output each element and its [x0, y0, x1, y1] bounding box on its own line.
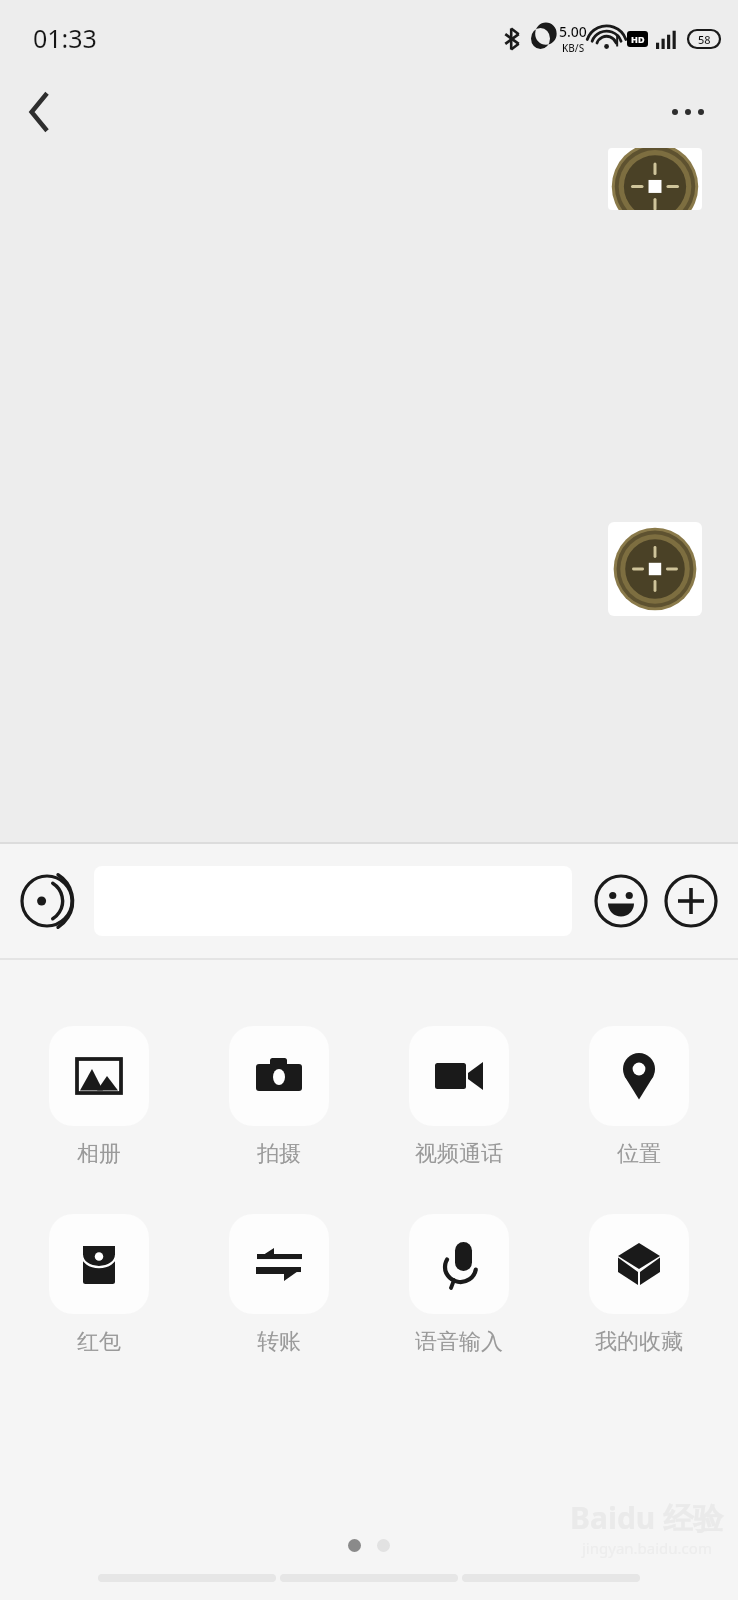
staticText: Baidu 经验 [570, 1497, 724, 1538]
button[interactable]: 红包 [40, 1214, 158, 1356]
button[interactable]: 转账 [220, 1214, 338, 1356]
button[interactable]: 拍摄 [220, 1026, 338, 1168]
button[interactable] [608, 148, 702, 210]
staticText: 我的收藏 [595, 1328, 683, 1356]
staticText: 相册 [77, 1140, 121, 1168]
button[interactable] [608, 522, 702, 616]
button[interactable]: 位置 [580, 1026, 698, 1168]
button[interactable]: Back [12, 84, 68, 140]
staticText: 位置 [617, 1140, 661, 1168]
staticText: 红包 [77, 1328, 121, 1356]
staticText: HD [631, 33, 645, 45]
button[interactable]: 我的收藏 [580, 1214, 698, 1356]
staticText: 转账 [257, 1328, 301, 1356]
staticText: 拍摄 [257, 1140, 301, 1168]
staticText: KB/S [562, 41, 585, 55]
button[interactable]: 视频通话 [400, 1026, 518, 1168]
staticText: 5.00 [559, 22, 587, 41]
staticText: 01:33 [33, 21, 97, 55]
staticText: 58 [698, 32, 711, 47]
button[interactable]: Voice message [18, 872, 76, 930]
button[interactable]: 语音输入 [400, 1214, 518, 1356]
button[interactable]: 相册 [40, 1026, 158, 1168]
staticText: 视频通话 [415, 1140, 503, 1168]
staticText: 语音输入 [415, 1328, 503, 1356]
button[interactable]: More functions [662, 872, 720, 930]
button[interactable]: More options [660, 90, 716, 134]
button[interactable]: Emoji [592, 872, 650, 930]
